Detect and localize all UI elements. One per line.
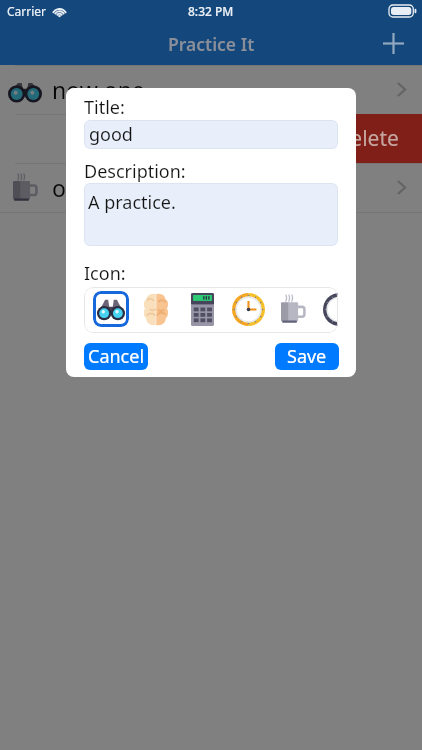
staticText: Practice It [168, 32, 255, 56]
button[interactable]: Brain icon [134, 287, 178, 331]
button[interactable]: one [0, 163, 422, 212]
button[interactable]: Clock icon [226, 287, 270, 331]
button[interactable]: Add [371, 21, 415, 65]
staticText: Save [287, 344, 327, 369]
staticText: Cancel [88, 344, 145, 369]
button[interactable]: Calculator icon [180, 287, 224, 331]
button[interactable]: now one [0, 65, 422, 114]
staticText: Description: [84, 159, 186, 184]
staticText: A practice. [88, 190, 176, 215]
button[interactable]: A practice. [84, 183, 338, 246]
staticText: now one [52, 74, 145, 105]
staticText: Carrier [7, 3, 47, 19]
button[interactable]: Binoculars icon [89, 287, 133, 331]
staticText: good [89, 122, 133, 147]
button[interactable]: Delete [312, 114, 422, 163]
staticText: Delete [335, 124, 399, 153]
button[interactable]: Cancel [84, 343, 148, 370]
staticText: 8:32 PM [188, 3, 234, 19]
button[interactable]: good [84, 120, 338, 149]
button[interactable]: Clock icon 2 [317, 287, 338, 331]
staticText: Title: [84, 95, 125, 120]
button[interactable]: Mug icon [271, 287, 315, 331]
button[interactable]: Save [275, 343, 339, 370]
staticText: one [52, 172, 94, 203]
staticText: Icon: [84, 261, 126, 286]
